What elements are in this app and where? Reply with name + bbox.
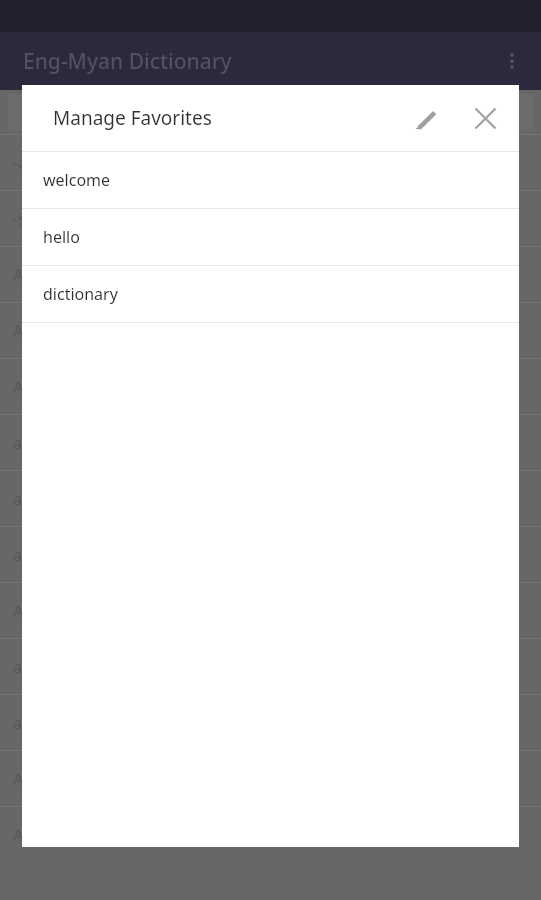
button[interactable]: dictionary (22, 266, 519, 322)
staticText: dictionary (43, 283, 118, 305)
staticText: a posteriori (13, 544, 100, 566)
button[interactable]: aback (0, 695, 541, 750)
staticText: aardvark (13, 656, 80, 678)
staticText: A-line (13, 768, 56, 790)
staticText: welcome (43, 169, 111, 191)
staticText: A.M. (13, 376, 47, 398)
button[interactable]: A-bomb (0, 247, 541, 302)
button[interactable]: aardvark (0, 639, 541, 694)
button[interactable]: a fortiori (0, 471, 541, 526)
button[interactable] (8, 94, 533, 130)
staticText: Eng-Myan Dictionary (23, 47, 232, 76)
staticText: a fortiori (13, 488, 79, 510)
button[interactable]: More options (491, 40, 533, 82)
button[interactable]: a cappella (0, 415, 541, 470)
staticText: A-road (13, 824, 64, 846)
staticText: a cappella (13, 432, 89, 454)
staticText: A.D. (13, 320, 43, 342)
button[interactable]: -ation (0, 135, 541, 190)
staticText: A-level (13, 600, 63, 622)
button[interactable]: A.M. (0, 359, 541, 414)
staticText: -ship (13, 208, 50, 230)
button[interactable]: A-line (0, 751, 541, 806)
staticText: Manage Favorites (53, 105, 212, 131)
button[interactable]: A.D. (0, 303, 541, 358)
button[interactable]: hello (22, 209, 519, 265)
button[interactable]: welcome (22, 152, 519, 208)
staticText: hello (43, 226, 80, 248)
button[interactable]: Edit favorites (402, 95, 448, 141)
button[interactable]: a posteriori (0, 527, 541, 582)
button[interactable]: Close (462, 95, 508, 141)
button[interactable]: A-road (0, 807, 541, 862)
button[interactable]: -ship (0, 191, 541, 246)
staticText: -ation (13, 152, 57, 174)
staticText: A-bomb (13, 264, 73, 286)
button[interactable]: A-level (0, 583, 541, 638)
staticText: aback (13, 712, 58, 734)
